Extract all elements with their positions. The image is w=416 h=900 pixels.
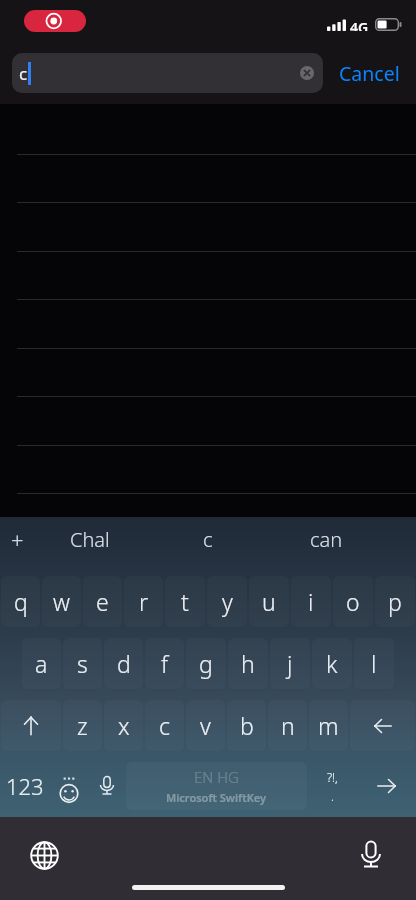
button[interactable]: m — [309, 700, 348, 751]
button[interactable]: l — [354, 638, 394, 689]
button[interactable]: q — [1, 576, 40, 627]
button[interactable]: o — [333, 576, 373, 627]
staticText: EN HG — [194, 767, 239, 787]
button[interactable]: p — [375, 576, 415, 627]
button[interactable]: Chal — [31, 517, 149, 562]
staticText: a — [35, 648, 48, 679]
button[interactable] — [0, 201, 416, 249]
button[interactable]: d — [104, 638, 143, 689]
staticText: v — [200, 710, 211, 741]
button[interactable]: Switch keyboard language — [28, 839, 60, 871]
staticText: b — [240, 710, 254, 741]
button[interactable]: u — [249, 576, 289, 627]
staticText: y — [222, 586, 233, 617]
button[interactable]: Enter — [358, 762, 415, 810]
button[interactable]: a — [22, 638, 61, 689]
staticText: p — [388, 586, 402, 617]
button[interactable]: j — [270, 638, 310, 689]
button[interactable]: Shift — [1, 700, 61, 751]
staticText: 4G — [350, 18, 369, 31]
button[interactable]: c — [145, 700, 184, 751]
staticText: Chal — [70, 526, 110, 553]
button[interactable]: Backspace — [350, 700, 415, 751]
button[interactable]: h — [228, 638, 268, 689]
staticText: h — [241, 648, 255, 679]
button[interactable] — [0, 298, 416, 346]
button[interactable] — [0, 443, 416, 491]
staticText: l — [371, 648, 377, 679]
staticText: ?!, — [327, 769, 338, 785]
button[interactable]: can — [267, 517, 385, 562]
button[interactable]: f — [145, 638, 184, 689]
button[interactable]: i — [291, 576, 331, 627]
staticText: t — [181, 586, 189, 617]
staticText: m — [318, 710, 339, 741]
staticText: can — [310, 526, 343, 553]
button[interactable]: c — [149, 517, 267, 562]
button[interactable]: n — [268, 700, 307, 751]
button[interactable]: Recording indicator — [24, 10, 86, 32]
staticText: Cancel — [339, 60, 400, 87]
button[interactable]: w — [42, 576, 81, 627]
button[interactable]: e — [83, 576, 122, 627]
staticText: + — [11, 525, 24, 555]
button[interactable] — [0, 395, 416, 443]
button[interactable] — [0, 346, 416, 394]
staticText: Microsoft SwiftKey — [166, 790, 267, 805]
staticText: w — [53, 586, 70, 617]
staticText: 123 — [6, 771, 44, 801]
staticText: u — [262, 586, 276, 617]
staticText: e — [96, 586, 109, 617]
button[interactable]: Voice typing — [89, 762, 125, 810]
button[interactable]: r — [124, 576, 163, 627]
button[interactable]: x — [104, 700, 143, 751]
staticText: j — [287, 648, 293, 679]
button[interactable]: Emoji — [51, 762, 87, 810]
button[interactable]: c — [12, 53, 323, 93]
button[interactable]: g — [186, 638, 226, 689]
button[interactable] — [0, 491, 416, 539]
staticText: o — [346, 586, 360, 617]
button[interactable] — [0, 249, 416, 297]
button[interactable]: t — [165, 576, 205, 627]
button[interactable]: Numbers and symbols — [1, 762, 49, 810]
staticText: r — [139, 586, 149, 617]
button[interactable]: Clear search text — [300, 66, 314, 80]
button[interactable]: s — [63, 638, 102, 689]
staticText: i — [308, 586, 314, 617]
button[interactable]: Cancel — [330, 53, 409, 93]
staticText: d — [117, 648, 131, 679]
staticText: c — [203, 526, 213, 553]
button[interactable]: Add to dictionary — [1, 517, 33, 562]
button[interactable]: y — [207, 576, 247, 627]
button[interactable]: b — [227, 700, 266, 751]
staticText: s — [77, 648, 88, 679]
staticText: c — [159, 710, 170, 741]
staticText: c — [19, 62, 28, 85]
staticText: n — [281, 710, 295, 741]
staticText: . — [331, 788, 334, 804]
button[interactable]: Punctuation — [308, 762, 356, 810]
staticText: f — [161, 648, 169, 679]
button[interactable]: k — [312, 638, 352, 689]
staticText: g — [199, 648, 213, 679]
button[interactable]: v — [186, 700, 225, 751]
button[interactable]: EN HG — [126, 762, 307, 810]
button[interactable]: z — [63, 700, 102, 751]
staticText: k — [326, 648, 338, 679]
button[interactable] — [0, 152, 416, 200]
staticText: q — [14, 586, 28, 617]
staticText: z — [77, 710, 88, 741]
button[interactable]: Voice dictation — [355, 839, 387, 871]
staticText: x — [118, 710, 130, 741]
